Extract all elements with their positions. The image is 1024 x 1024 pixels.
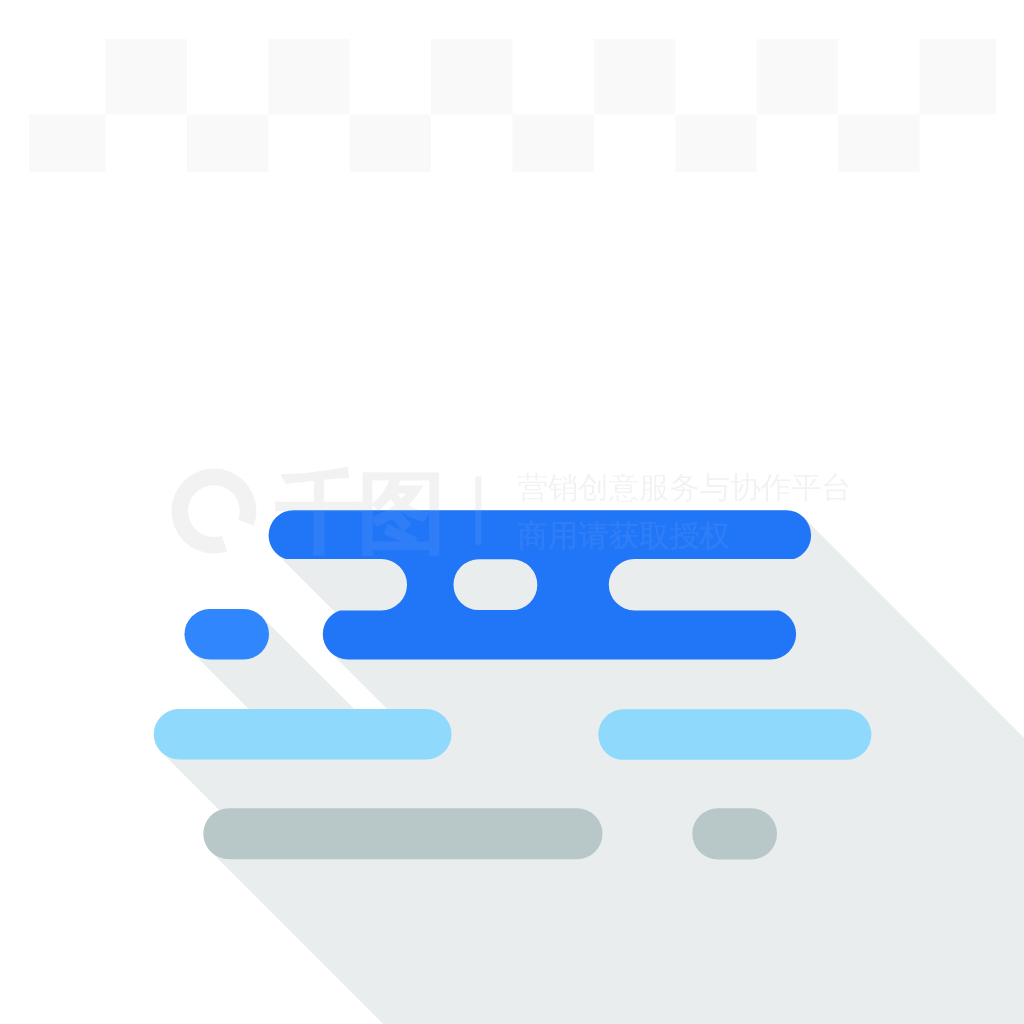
button[interactable]: Body row	[153, 709, 871, 760]
button[interactable]: Subtitle row	[184, 609, 796, 659]
button[interactable]: Headline row	[268, 510, 811, 560]
other: Flat long-shadow document illustration	[0, 0, 1024, 1024]
button[interactable]: Caption row	[203, 808, 777, 859]
